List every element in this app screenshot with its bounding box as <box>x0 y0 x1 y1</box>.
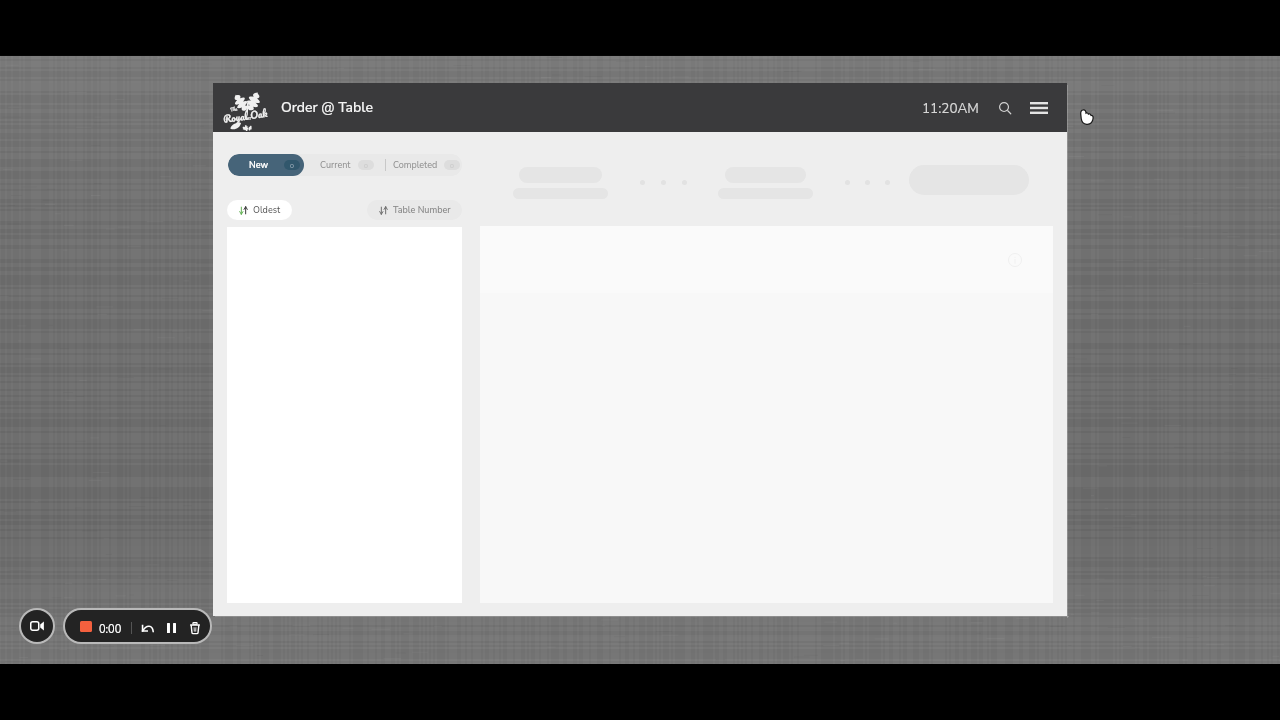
button[interactable]: Stop recording <box>80 621 92 632</box>
staticText: 11:20AM <box>922 99 979 117</box>
button[interactable]: Completed <box>391 154 462 176</box>
staticText: Order @ Table <box>281 98 373 117</box>
button[interactable]: Menu <box>1026 95 1052 121</box>
staticText: Completed <box>393 159 438 171</box>
staticText: 0 <box>450 161 454 170</box>
button[interactable]: Delete <box>187 619 203 637</box>
staticText: Current <box>320 159 351 171</box>
button[interactable]: Current <box>314 154 378 176</box>
staticText: EST <box>246 117 252 121</box>
button[interactable]: Pause <box>163 619 179 637</box>
staticText: The <box>230 105 238 113</box>
staticText: 0:00 <box>99 622 122 637</box>
button[interactable]: Record video <box>19 608 55 644</box>
staticText: Royal Oak <box>222 105 269 128</box>
staticText: Oldest <box>253 204 281 216</box>
staticText: New <box>249 159 269 171</box>
button[interactable]: Search <box>992 95 1018 121</box>
button[interactable]: Oldest <box>227 200 292 220</box>
button[interactable]: Table Number <box>367 200 462 220</box>
staticText: 0 <box>290 161 294 170</box>
button[interactable]: New <box>228 154 304 176</box>
staticText: Table Number <box>393 204 451 216</box>
staticText: 0 <box>364 161 368 170</box>
button[interactable]: Undo <box>137 619 157 637</box>
